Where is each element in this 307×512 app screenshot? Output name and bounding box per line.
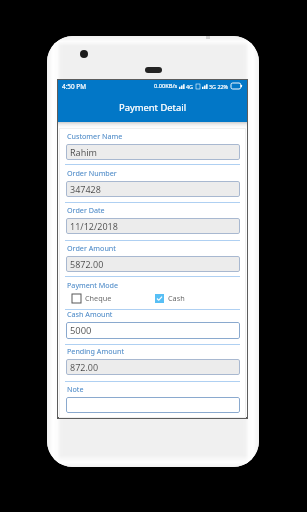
staticText: 4G — [186, 83, 194, 90]
staticText: 347428 — [70, 183, 101, 195]
staticText: 11/12/2018 — [70, 220, 118, 232]
staticText: 5000 — [70, 324, 92, 337]
staticText: 4:50 PM — [62, 82, 87, 91]
staticText: Pending Amount — [67, 346, 124, 356]
staticText: Cheque — [85, 293, 112, 303]
button[interactable]: 11/12/2018 — [66, 218, 240, 234]
staticText: Customer Name — [67, 131, 123, 141]
button[interactable]: Cash — [155, 293, 185, 303]
staticText: 5872.00 — [70, 258, 104, 270]
staticText: 872.00 — [70, 361, 99, 373]
button[interactable] — [66, 397, 240, 413]
staticText: Payment Detail — [119, 101, 187, 114]
staticText: 0.00KB/s — [154, 82, 178, 90]
button[interactable]: 5000 — [66, 322, 240, 339]
staticText: Order Date — [67, 205, 105, 215]
staticText: Order Amount — [67, 243, 116, 253]
button[interactable]: 872.00 — [66, 359, 240, 375]
staticText: Note — [67, 384, 84, 394]
button[interactable]: Rahim — [66, 144, 240, 160]
staticText: Rahim — [70, 146, 97, 158]
staticText: Cash — [168, 293, 185, 303]
button[interactable]: 5872.00 — [66, 256, 240, 272]
staticText: Cash Amount — [67, 309, 113, 319]
button[interactable]: 347428 — [66, 181, 240, 197]
staticText: Payment Mode — [67, 280, 119, 290]
staticText: 3G 22% — [209, 83, 229, 90]
staticText: Order Number — [67, 168, 117, 178]
button[interactable]: Cheque — [72, 293, 112, 303]
